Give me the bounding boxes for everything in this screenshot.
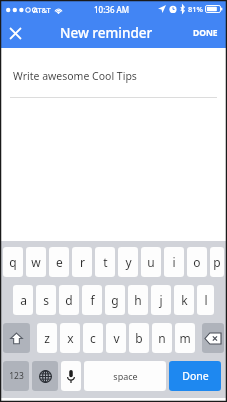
staticText: 123	[9, 370, 24, 382]
button[interactable]: key	[202, 323, 224, 353]
staticText: t	[103, 254, 108, 270]
button[interactable]: f	[82, 285, 102, 315]
staticText: AT&T	[33, 5, 51, 15]
staticText: q	[9, 254, 17, 270]
button[interactable]: a	[13, 285, 33, 315]
staticText: b	[135, 330, 143, 346]
staticText: a	[20, 292, 27, 308]
button[interactable]: k	[174, 285, 194, 315]
button[interactable]: d	[59, 285, 79, 315]
button[interactable]: l	[197, 285, 214, 315]
button[interactable]: s	[36, 285, 56, 315]
staticText: w	[31, 254, 41, 270]
staticText: k	[181, 292, 188, 308]
button[interactable]: j	[151, 285, 171, 315]
button[interactable]: key	[61, 361, 81, 391]
button[interactable]: m	[175, 323, 195, 353]
button[interactable]: n	[152, 323, 172, 353]
button[interactable]: key	[3, 323, 30, 353]
staticText: y	[125, 254, 132, 270]
button[interactable]: i	[164, 247, 184, 277]
staticText: DONE	[193, 27, 218, 39]
staticText: i	[172, 254, 176, 270]
button[interactable]: e	[49, 247, 69, 277]
staticText: e	[56, 254, 63, 270]
staticText: space	[113, 370, 138, 382]
button[interactable]: p	[210, 247, 224, 277]
staticText: o	[193, 254, 201, 270]
button[interactable]: DONE	[184, 18, 227, 48]
button[interactable]: t	[95, 247, 115, 277]
staticText: g	[111, 292, 119, 308]
button[interactable]: Done	[169, 361, 221, 391]
button[interactable]: c	[83, 323, 103, 353]
button[interactable]: 123	[3, 361, 29, 391]
staticText: c	[90, 330, 96, 346]
staticText: u	[147, 254, 155, 270]
button[interactable]: h	[128, 285, 148, 315]
staticText: j	[159, 292, 163, 308]
button[interactable]: y	[118, 247, 138, 277]
button[interactable]: key	[32, 361, 58, 391]
button[interactable]: g	[105, 285, 125, 315]
button[interactable]: u	[141, 247, 161, 277]
button[interactable]: q	[3, 247, 23, 277]
staticText: n	[158, 330, 166, 346]
staticText: 10:36 AM	[94, 4, 130, 15]
button[interactable]: v	[106, 323, 126, 353]
button[interactable]: z	[37, 323, 57, 353]
staticText: h	[134, 292, 142, 308]
staticText: z	[44, 330, 50, 346]
button[interactable]: x	[60, 323, 80, 353]
staticText: x	[67, 330, 74, 346]
button[interactable]: o	[187, 247, 207, 277]
staticText: p	[213, 254, 221, 270]
staticText: s	[43, 292, 49, 308]
staticText: Write awesome Cool Tips	[13, 69, 137, 83]
button[interactable]: b	[129, 323, 149, 353]
button[interactable]: r	[72, 247, 92, 277]
staticText: d	[65, 292, 73, 308]
staticText: r	[80, 254, 85, 270]
staticText: 81%	[188, 4, 203, 14]
button[interactable]: space	[84, 361, 166, 391]
button[interactable]: Close	[0, 18, 30, 48]
staticText: Done	[182, 369, 209, 383]
staticText: l	[204, 292, 208, 308]
staticText: New reminder	[60, 24, 153, 42]
button[interactable]: w	[26, 247, 46, 277]
staticText: v	[113, 330, 120, 346]
staticText: m	[179, 330, 191, 346]
staticText: f	[90, 292, 95, 308]
